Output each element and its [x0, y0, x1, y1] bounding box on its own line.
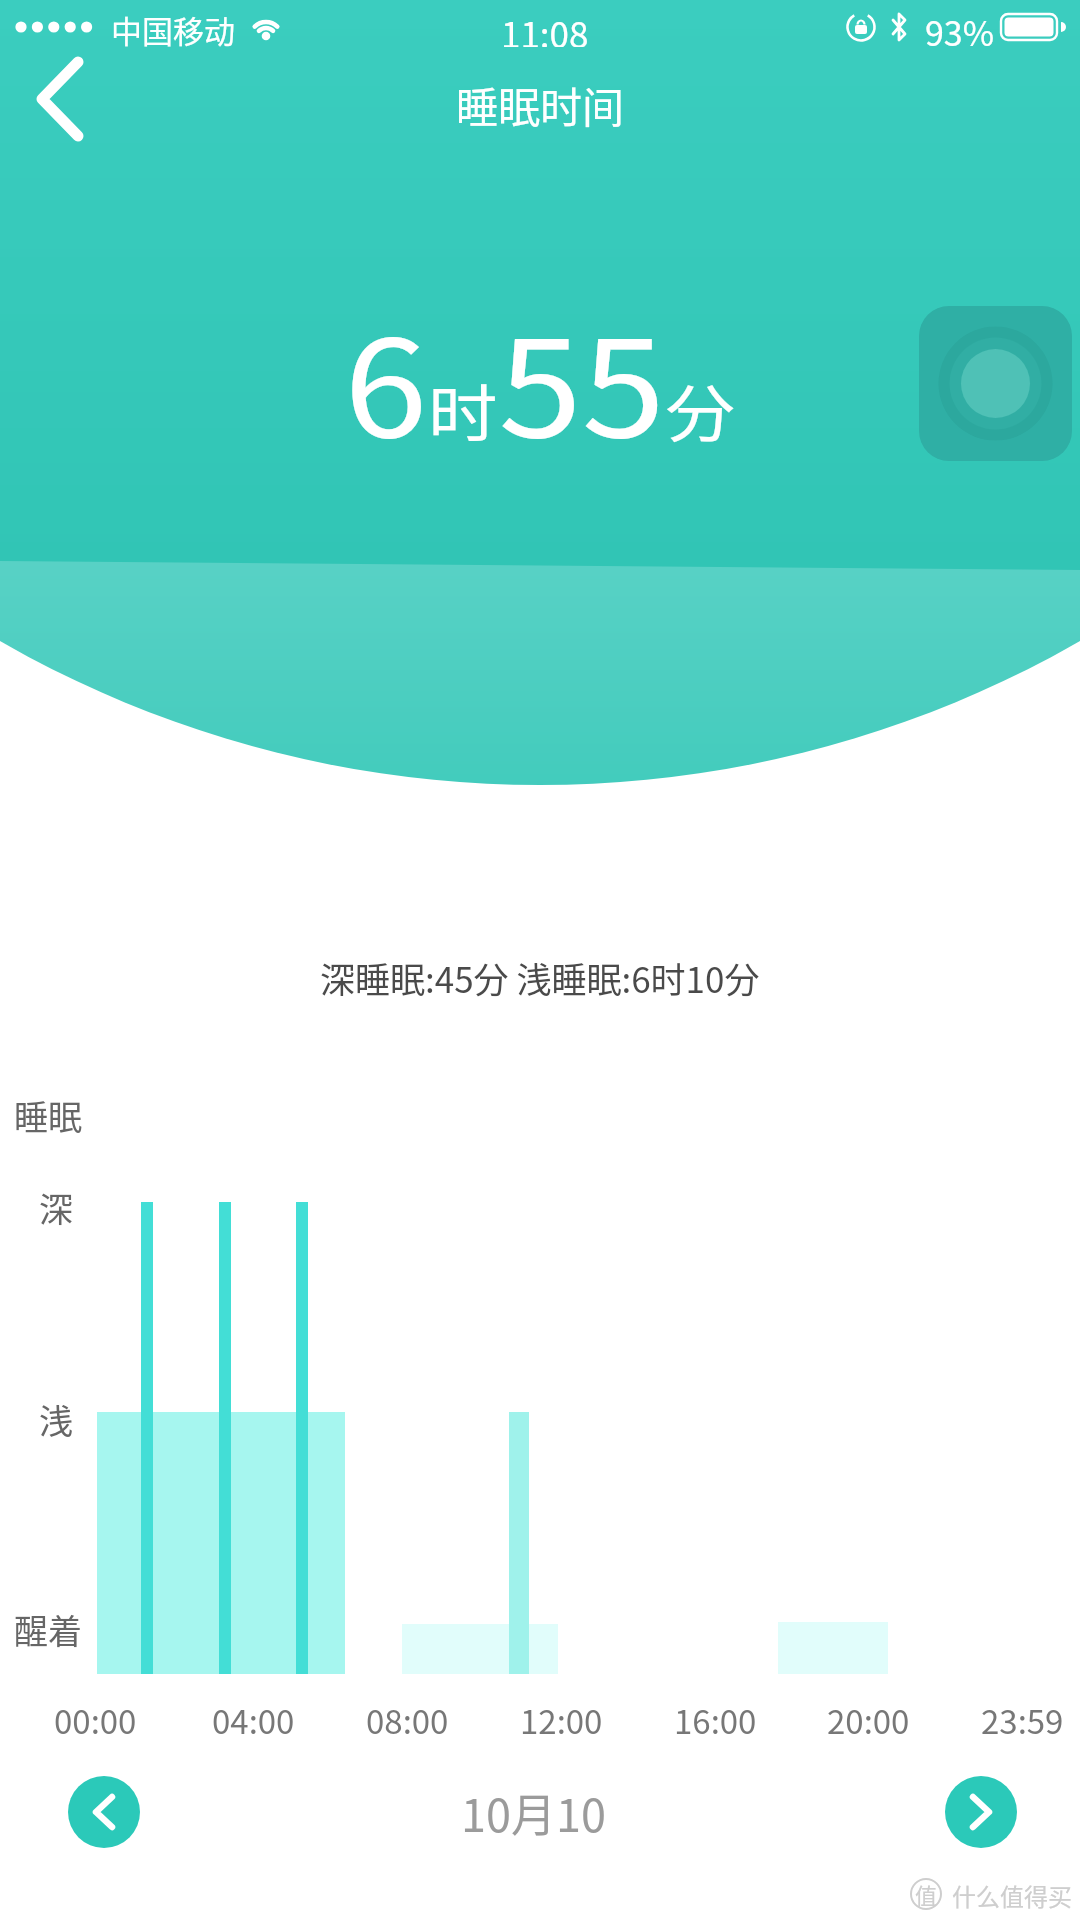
staticText: 16:00	[674, 1696, 757, 1738]
staticText: 睡眠时间	[456, 74, 625, 134]
staticText: 深	[39, 1183, 73, 1227]
staticText: 时	[428, 365, 499, 455]
staticText: 08:00	[366, 1696, 449, 1738]
staticText: 中国移动	[111, 7, 235, 47]
staticText: 6	[344, 282, 428, 476]
staticText: 10月10	[461, 1780, 606, 1840]
staticText: 深睡眠:45分 浅睡眠:6时10分	[320, 952, 760, 1003]
staticText: 23:59	[981, 1696, 1064, 1738]
staticText: 11:08	[501, 7, 589, 47]
staticText: 浅	[39, 1395, 73, 1439]
staticText: 20:00	[827, 1696, 910, 1738]
button[interactable]	[945, 1776, 1017, 1848]
button[interactable]	[919, 306, 1072, 461]
staticText: 00:00	[54, 1696, 137, 1738]
button[interactable]	[68, 1776, 140, 1848]
staticText: 12:00	[520, 1696, 603, 1738]
staticText: 55	[499, 282, 665, 476]
staticText: 醒着	[14, 1605, 82, 1649]
staticText: 93%	[925, 7, 995, 47]
staticText: 值	[915, 1878, 938, 1910]
button[interactable]	[20, 50, 100, 150]
staticText: 04:00	[212, 1696, 295, 1738]
staticText: 分	[665, 365, 736, 455]
staticText: 睡眠	[14, 1091, 82, 1135]
staticText: 什么值得买	[952, 1878, 1072, 1910]
